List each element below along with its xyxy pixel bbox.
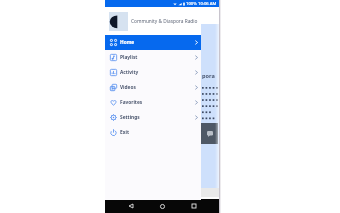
staticText: Videos [120,84,136,91]
button[interactable]: Home [156,200,168,212]
staticText: Settings [120,114,140,121]
staticText: Activity [120,69,139,76]
staticText: 100% [186,1,197,7]
button[interactable]: Chat [201,123,218,144]
button[interactable]: Home [105,35,201,50]
staticText: Favorites [120,99,143,106]
button[interactable]: Exit [105,125,201,140]
staticText: Exit [120,129,129,136]
staticText: Community & Diaspora Radio [131,18,198,25]
button[interactable]: Favorites [105,95,201,110]
staticText: Playlist [120,54,138,61]
staticText: 10:06 AM [198,1,217,7]
button[interactable]: Back [125,200,137,212]
button[interactable]: Activity [105,65,201,80]
button[interactable]: Recents [188,200,200,212]
staticText: Home [120,39,135,46]
button[interactable]: Videos [105,80,201,95]
button[interactable]: Settings [105,110,201,125]
staticText: pora [202,72,215,80]
button[interactable]: Playlist [105,50,201,65]
